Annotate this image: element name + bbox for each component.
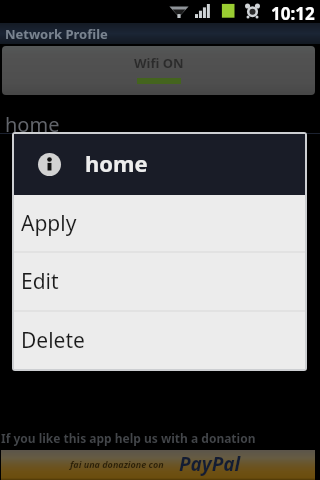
staticText: Delete [21, 326, 85, 355]
button[interactable]: Edit [14, 253, 305, 310]
button[interactable]: Delete [14, 312, 305, 369]
other: Mobile signal [195, 4, 210, 18]
staticText: fai una donazione con [70, 458, 164, 470]
staticText: Wifi ON [134, 54, 184, 72]
button[interactable]: home [0, 96, 320, 132]
other: Info [38, 153, 61, 176]
staticText: If you like this app help us with a dona… [1, 430, 256, 446]
staticText: home [85, 148, 148, 178]
staticText: Apply [21, 209, 77, 238]
button[interactable]: Wifi ON [2, 46, 315, 95]
staticText: PayPal [179, 451, 241, 477]
staticText: home [5, 111, 60, 138]
button[interactable]: fai una donazione con [1, 450, 315, 480]
staticText: 10:12 [271, 2, 315, 25]
other: Battery full [221, 3, 236, 18]
other: Wi-Fi connected [169, 4, 189, 18]
staticText: Network Profile [5, 25, 108, 43]
button[interactable]: Apply [14, 195, 305, 251]
other: Alarm set [245, 3, 260, 18]
staticText: Edit [21, 267, 59, 296]
